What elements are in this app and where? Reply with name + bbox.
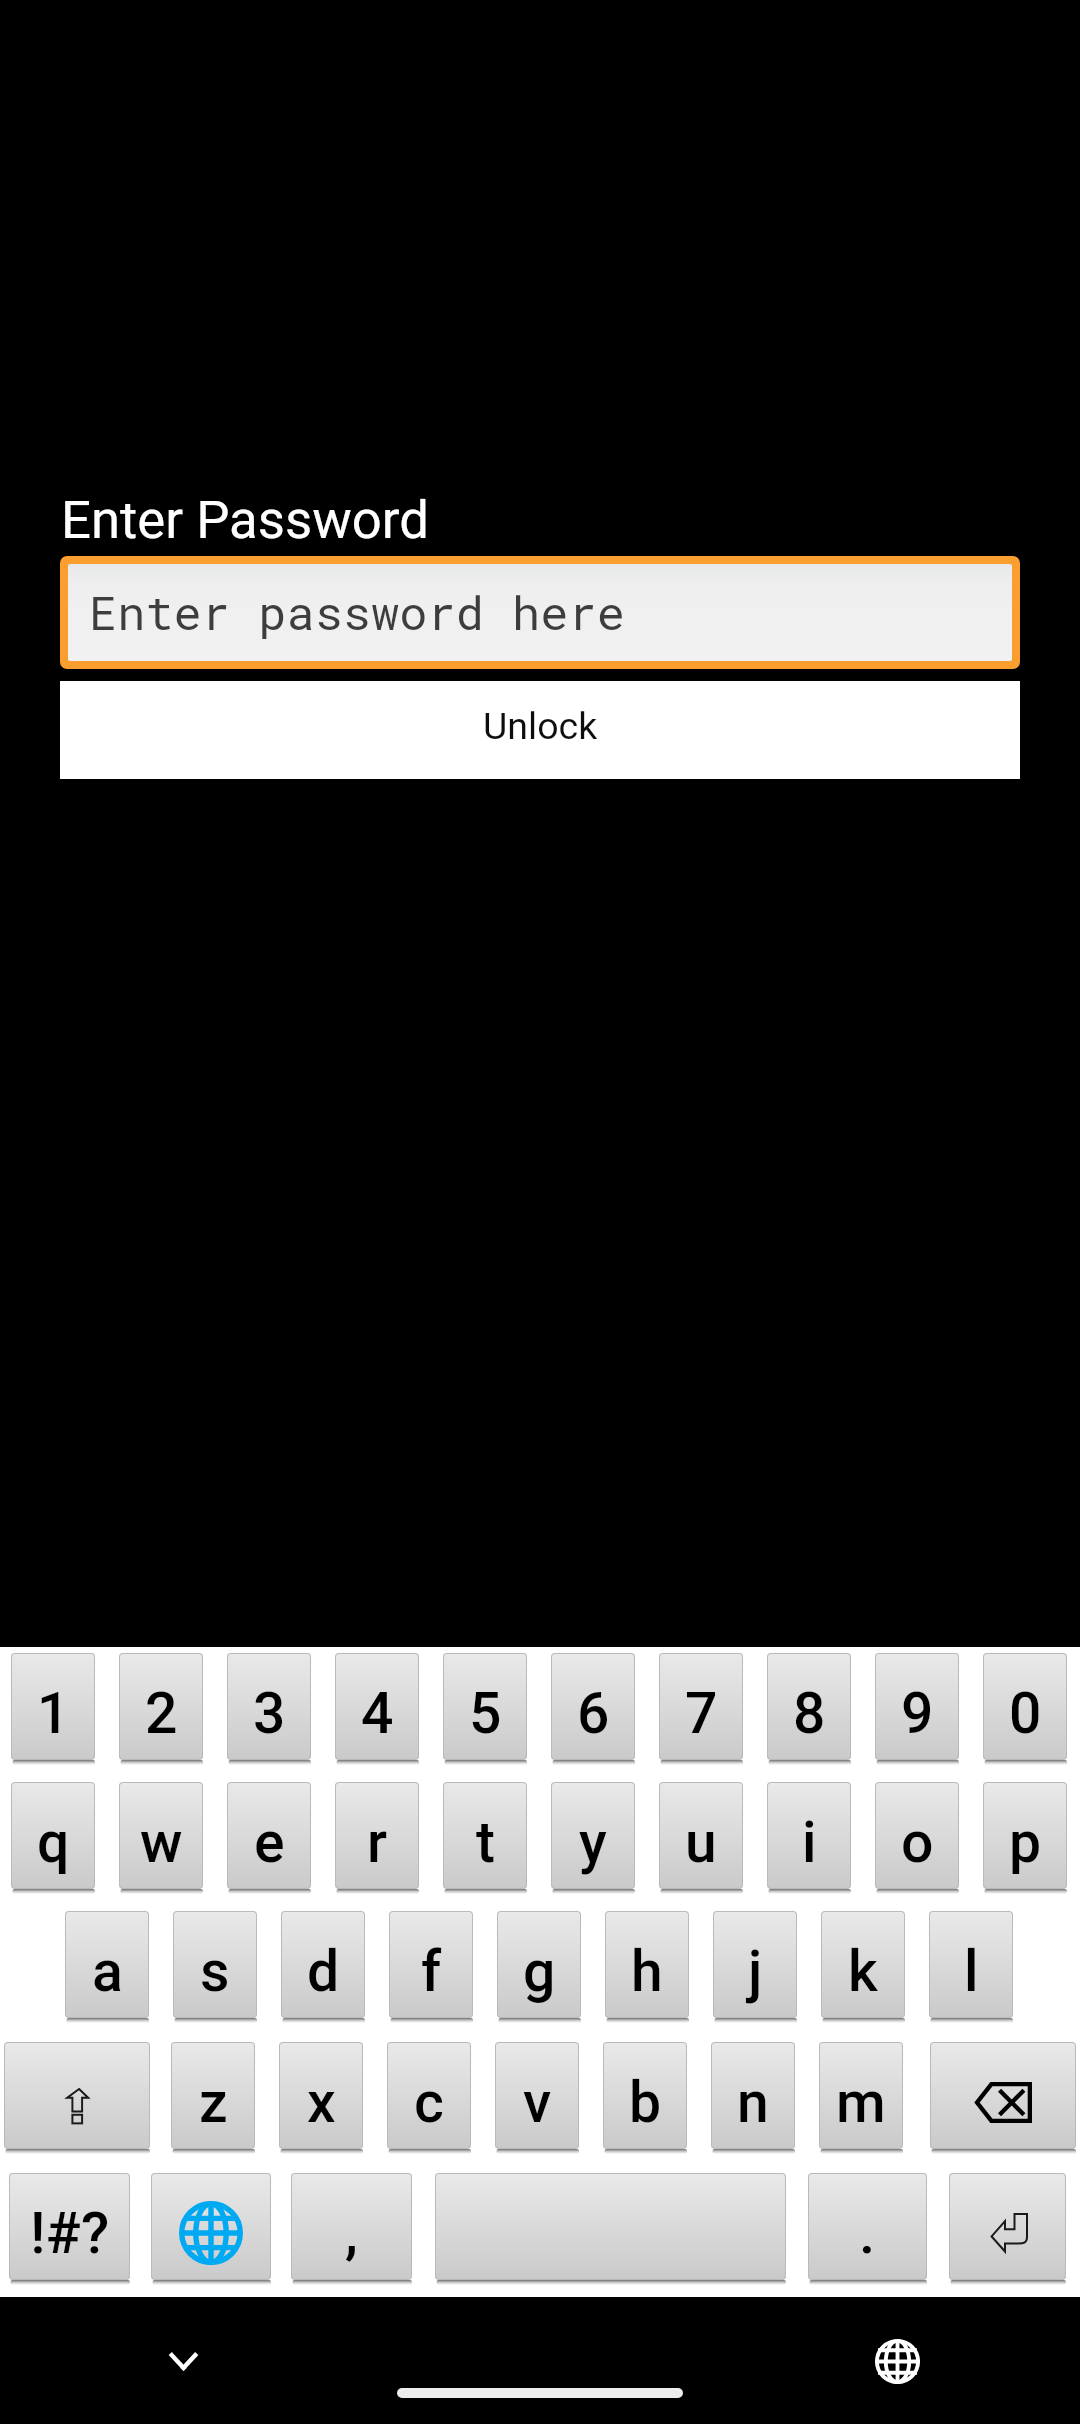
staticText: . [859, 2199, 876, 2267]
button[interactable]: p [984, 1783, 1066, 1888]
button[interactable]: 4 [336, 1654, 418, 1759]
staticText: !#? [30, 2199, 110, 2267]
staticText: q [37, 1809, 70, 1876]
button[interactable]: 8 [768, 1654, 850, 1759]
button[interactable]: u [660, 1783, 742, 1888]
button[interactable]: Hide keyboard [135, 2313, 231, 2409]
button[interactable]: r [336, 1783, 418, 1888]
staticText: b [629, 2069, 662, 2136]
button[interactable]: o [876, 1783, 958, 1888]
button[interactable]: g [498, 1912, 580, 2017]
button[interactable]: Enter [950, 2174, 1065, 2279]
staticText: l [964, 1938, 979, 2005]
staticText: 0 [1009, 1680, 1042, 1747]
staticText: Enter Password [61, 489, 429, 551]
staticText: a [92, 1938, 123, 2005]
button[interactable]: n [712, 2043, 794, 2148]
staticText: f [421, 1938, 442, 2005]
button[interactable]: w [120, 1783, 202, 1888]
staticText: o [901, 1809, 934, 1876]
button[interactable]: v [496, 2043, 578, 2148]
staticText: 4 [361, 1680, 394, 1747]
staticText: 9 [901, 1680, 934, 1747]
staticText: y [579, 1809, 607, 1876]
button[interactable]: Enter password here [68, 564, 1012, 661]
staticText: Enter password here [89, 581, 625, 643]
staticText: u [685, 1809, 717, 1876]
button[interactable]: 5 [444, 1654, 526, 1759]
staticText: i [802, 1809, 817, 1876]
button[interactable]: b [604, 2043, 686, 2148]
button[interactable]: j [714, 1912, 796, 2017]
button[interactable]: d [282, 1912, 364, 2017]
button[interactable]: m [820, 2043, 902, 2148]
staticText: w [140, 1809, 183, 1876]
staticText: e [254, 1809, 285, 1876]
staticText: 8 [793, 1680, 826, 1747]
button[interactable]: 0 [984, 1654, 1066, 1759]
staticText: 5 [469, 1680, 502, 1747]
button[interactable]: 3 [228, 1654, 310, 1759]
button[interactable]: 1 [12, 1654, 94, 1759]
staticText: c [414, 2069, 444, 2136]
button[interactable]: z [172, 2043, 254, 2148]
staticText: n [737, 2069, 769, 2136]
staticText: s [200, 1938, 230, 2005]
button[interactable]: . [809, 2174, 926, 2279]
staticText: p [1009, 1809, 1042, 1876]
staticText: Unlock [483, 704, 598, 748]
staticText: 6 [577, 1680, 610, 1747]
button[interactable]: e [228, 1783, 310, 1888]
staticText: k [848, 1938, 878, 2005]
button[interactable]: a [66, 1912, 148, 2017]
staticText: m [836, 2069, 886, 2136]
button[interactable]: h [606, 1912, 688, 2017]
button[interactable]: !#? [10, 2174, 129, 2279]
button[interactable]: f [390, 1912, 472, 2017]
button[interactable]: i [768, 1783, 850, 1888]
staticText: 2 [145, 1680, 178, 1747]
button[interactable]: y [552, 1783, 634, 1888]
button[interactable]: Unlock [60, 681, 1020, 779]
staticText: t [476, 1809, 495, 1876]
staticText: x [307, 2069, 336, 2136]
button[interactable]: Space [436, 2174, 785, 2279]
button[interactable]: , [292, 2174, 411, 2279]
staticText: , [345, 2199, 358, 2267]
staticText: g [523, 1938, 556, 2005]
staticText: 1 [37, 1680, 70, 1747]
staticText: j [748, 1938, 763, 2005]
button[interactable]: c [388, 2043, 470, 2148]
button[interactable]: 6 [552, 1654, 634, 1759]
staticText: r [367, 1809, 388, 1876]
staticText: v [523, 2069, 552, 2136]
button[interactable]: Switch input method [849, 2313, 945, 2409]
button[interactable]: s [174, 1912, 256, 2017]
button[interactable]: Shift [5, 2043, 149, 2148]
button[interactable]: Backspace [931, 2043, 1075, 2148]
button[interactable]: t [444, 1783, 526, 1888]
button[interactable]: q [12, 1783, 94, 1888]
staticText: 3 [253, 1680, 286, 1747]
staticText: h [631, 1938, 663, 2005]
button[interactable]: 7 [660, 1654, 742, 1759]
button[interactable]: k [822, 1912, 904, 2017]
button[interactable]: 2 [120, 1654, 202, 1759]
button[interactable]: l [930, 1912, 1012, 2017]
staticText: d [307, 1938, 340, 2005]
staticText: z [199, 2069, 228, 2136]
button[interactable]: 9 [876, 1654, 958, 1759]
button[interactable]: Change keyboard language [152, 2174, 270, 2279]
button[interactable]: x [280, 2043, 362, 2148]
staticText: 7 [685, 1680, 718, 1747]
